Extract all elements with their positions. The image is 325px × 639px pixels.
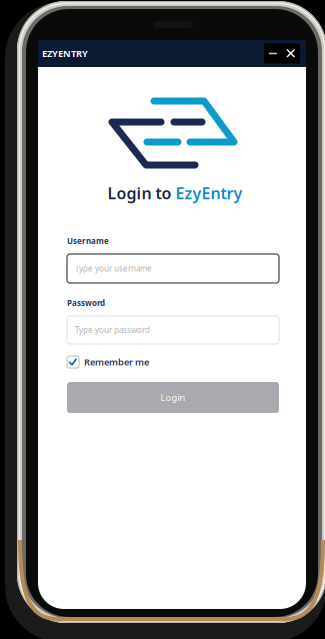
staticText: Type your password — [75, 325, 150, 335]
button[interactable]: Minimize — [264, 43, 282, 63]
button[interactable]: Login — [67, 382, 279, 413]
staticText: Username — [67, 236, 109, 246]
staticText: Login — [160, 391, 185, 404]
staticText: Login to — [107, 182, 175, 204]
staticText: EZYENTRY — [42, 47, 88, 60]
staticText: Password — [67, 298, 105, 308]
staticText: Remember me — [84, 356, 149, 368]
staticText: EzyEntry — [175, 182, 242, 204]
button[interactable]: Close — [282, 43, 300, 63]
button[interactable]: Remember me — [67, 354, 279, 370]
staticText: Type your username — [75, 263, 152, 274]
